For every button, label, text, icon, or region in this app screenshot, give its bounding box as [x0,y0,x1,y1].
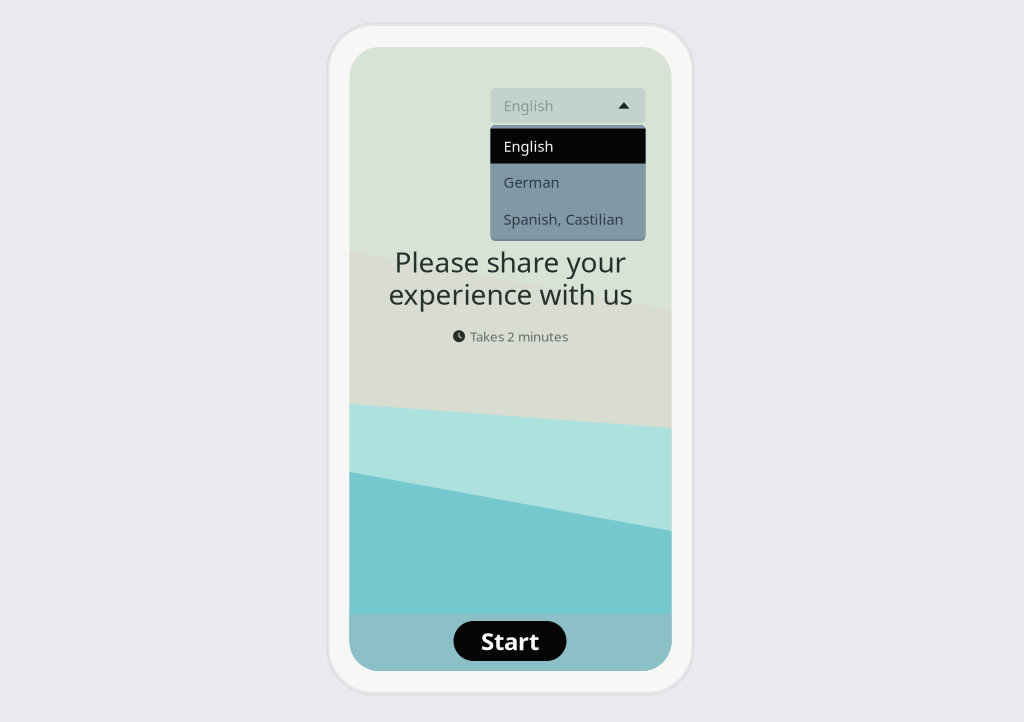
staticText: Takes 2 minutes [470,327,568,345]
staticText: English [503,96,553,115]
button[interactable]: English [490,128,645,163]
button[interactable]: Language, English [490,88,645,123]
staticText: experience with us [388,275,632,312]
staticText: Please share your [394,243,626,280]
staticText: Start [481,625,539,657]
button[interactable]: Start [453,621,566,661]
staticText: German [503,172,559,192]
button[interactable]: German [490,163,645,200]
staticText: Spanish, Castilian [503,209,623,229]
staticText: English [503,136,553,156]
button[interactable]: Spanish, Castilian [490,200,645,237]
